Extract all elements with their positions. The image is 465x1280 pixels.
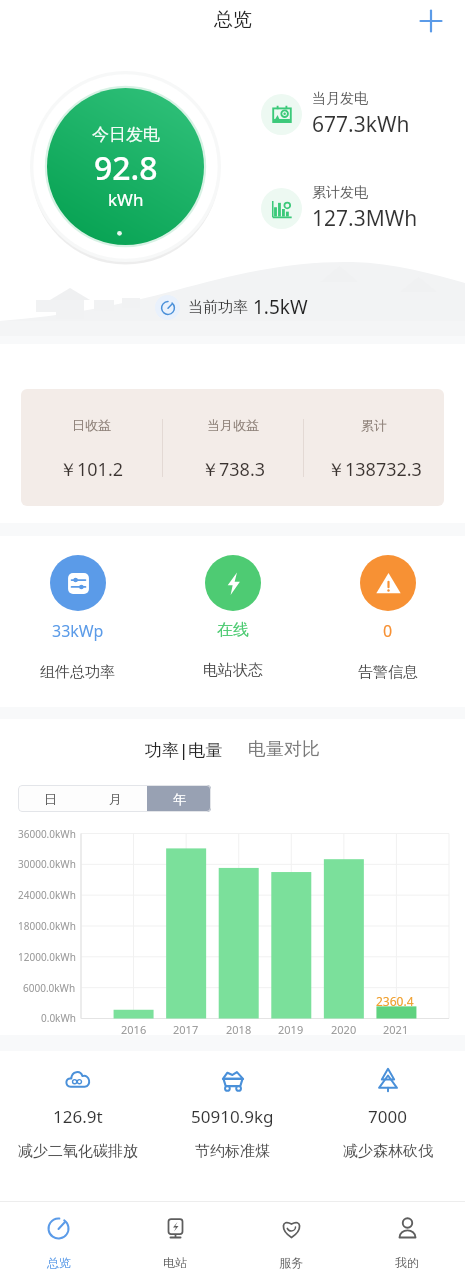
staticText: 12000.0kWh	[18, 950, 76, 964]
staticText: 年	[173, 791, 186, 807]
staticText: 减少二氧化碳排放	[18, 1142, 138, 1161]
button[interactable]: 在线	[155, 536, 310, 707]
staticText: 2360.4	[376, 993, 414, 1009]
staticText: 0	[383, 620, 393, 642]
staticText: 电量对比	[248, 738, 320, 761]
staticText: 36000.0kWh	[18, 827, 76, 841]
staticText: 7000	[368, 1105, 407, 1128]
button[interactable]: 50910.9kg	[155, 1051, 310, 1201]
staticText: 6000.0kWh	[23, 981, 76, 995]
staticText: 24000.0kWh	[18, 888, 76, 902]
staticText: 累计发电	[312, 184, 368, 202]
staticText: 总览	[47, 1255, 71, 1270]
staticText: 总览	[214, 8, 252, 32]
staticText: 2019	[278, 1022, 304, 1037]
button[interactable]: 总览	[0, 1202, 117, 1280]
button[interactable]: 年	[147, 785, 211, 812]
button[interactable]: 126.9t	[0, 1051, 155, 1201]
staticText: 减少森林砍伐	[343, 1142, 433, 1161]
button[interactable]: 33kWp	[0, 536, 155, 707]
staticText: 2020	[331, 1022, 357, 1037]
button[interactable]: Add	[416, 6, 446, 36]
staticText: 126.9t	[53, 1105, 103, 1128]
button[interactable]: 当月收益	[163, 389, 303, 506]
staticText: 18000.0kWh	[18, 919, 76, 933]
button[interactable]: 累计发电	[261, 184, 418, 233]
button[interactable]: 电量对比	[248, 738, 320, 761]
button[interactable]: 7000	[310, 1051, 465, 1201]
staticText: 677.3kWh	[312, 110, 410, 139]
staticText: kWh	[108, 188, 144, 211]
staticText: ￥738.3	[201, 457, 266, 482]
staticText: 1.5kW	[253, 294, 308, 320]
staticText: ￥101.2	[59, 457, 124, 482]
staticText: 0.0kWh	[41, 1011, 76, 1025]
staticText: 33kWp	[52, 620, 104, 642]
staticText: 服务	[279, 1255, 303, 1270]
staticText: 2021	[383, 1022, 409, 1037]
staticText: 30000.0kWh	[18, 857, 76, 871]
staticText: 月	[109, 791, 122, 807]
staticText: 当前功率	[188, 298, 248, 317]
staticText: 电站状态	[203, 661, 263, 680]
button[interactable]: 我的	[349, 1202, 465, 1280]
staticText: 2016	[121, 1022, 147, 1037]
staticText: 电站	[163, 1255, 187, 1270]
staticText: 组件总功率	[40, 663, 115, 682]
staticText: ￥138732.3	[327, 457, 422, 482]
staticText: 日	[44, 791, 57, 807]
staticText: 功率|电量	[145, 738, 223, 761]
staticText: 今日发电	[92, 124, 160, 145]
staticText: 当月收益	[207, 417, 259, 433]
staticText: 累计	[361, 417, 387, 433]
button[interactable]: 累计	[304, 389, 444, 506]
staticText: 当月发电	[312, 90, 368, 108]
staticText: 日收益	[72, 417, 111, 433]
button[interactable]: 电站	[117, 1202, 233, 1280]
staticText: 我的	[395, 1255, 419, 1270]
staticText: 50910.9kg	[191, 1105, 274, 1128]
staticText: 2018	[226, 1022, 252, 1037]
staticText: 告警信息	[358, 663, 418, 682]
button[interactable]: 功率|电量	[145, 738, 223, 761]
button[interactable]: 当前功率	[155, 294, 308, 320]
button[interactable]: 当月发电	[261, 90, 410, 139]
staticText: 2017	[173, 1022, 199, 1037]
button[interactable]: 日	[18, 785, 83, 812]
button[interactable]: 日收益	[21, 389, 162, 506]
button[interactable]: 月	[83, 785, 147, 812]
staticText: 92.8	[94, 146, 158, 190]
staticText: 节约标准煤	[195, 1142, 270, 1161]
button[interactable]: 0	[310, 536, 465, 707]
button[interactable]: 服务	[233, 1202, 349, 1280]
staticText: 127.3MWh	[312, 204, 418, 233]
staticText: 在线	[217, 620, 249, 640]
